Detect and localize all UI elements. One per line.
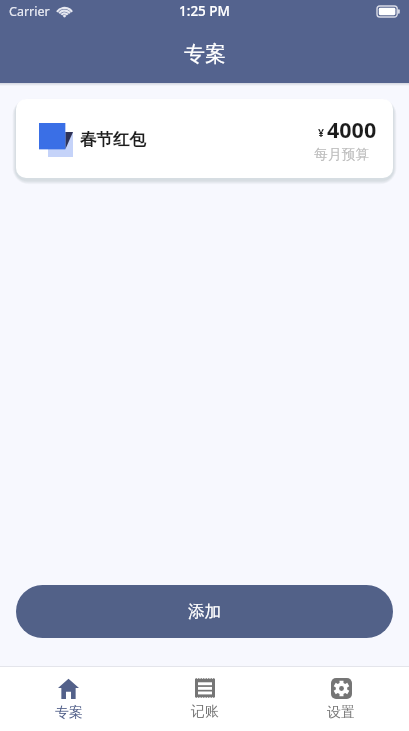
staticText: 专案 — [55, 704, 83, 722]
button[interactable]: 春节红包 — [16, 99, 393, 178]
button[interactable]: 专案 — [0, 667, 137, 731]
button[interactable]: 设置 — [273, 667, 409, 731]
staticText: 专案 — [184, 41, 226, 67]
staticText: 每月预算 — [314, 146, 370, 163]
staticText: 1:25 PM — [179, 2, 230, 20]
staticText: ¥ — [318, 126, 325, 140]
staticText: 添加 — [188, 601, 221, 622]
staticText: Carrier — [9, 3, 50, 20]
button[interactable]: 添加 — [16, 585, 393, 638]
staticText: 设置 — [327, 704, 355, 722]
staticText: 春节红包 — [80, 129, 146, 150]
staticText: 4000 — [327, 115, 377, 144]
button[interactable]: 记账 — [137, 667, 273, 731]
staticText: 记账 — [191, 703, 219, 721]
